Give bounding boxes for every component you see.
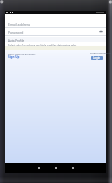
button[interactable]: Don't have an account? xyxy=(8,52,36,55)
staticText: Auto-Profile xyxy=(8,39,25,43)
button[interactable]: Show password xyxy=(99,30,103,33)
button[interactable]: Sign Up xyxy=(8,55,20,59)
button[interactable] xyxy=(5,19,106,28)
button[interactable]: Forgot password? xyxy=(90,51,111,54)
button[interactable]: Recent apps xyxy=(68,163,77,173)
button[interactable] xyxy=(5,28,106,35)
button[interactable]: Login xyxy=(91,56,103,60)
button[interactable]: Home xyxy=(51,163,60,173)
button[interactable]: Back xyxy=(34,163,43,173)
staticText: Login xyxy=(93,56,101,60)
staticText: Password xyxy=(8,30,24,35)
staticText: Select why I purchase multiple profiles … xyxy=(8,44,77,48)
staticText: Email address xyxy=(8,22,31,27)
